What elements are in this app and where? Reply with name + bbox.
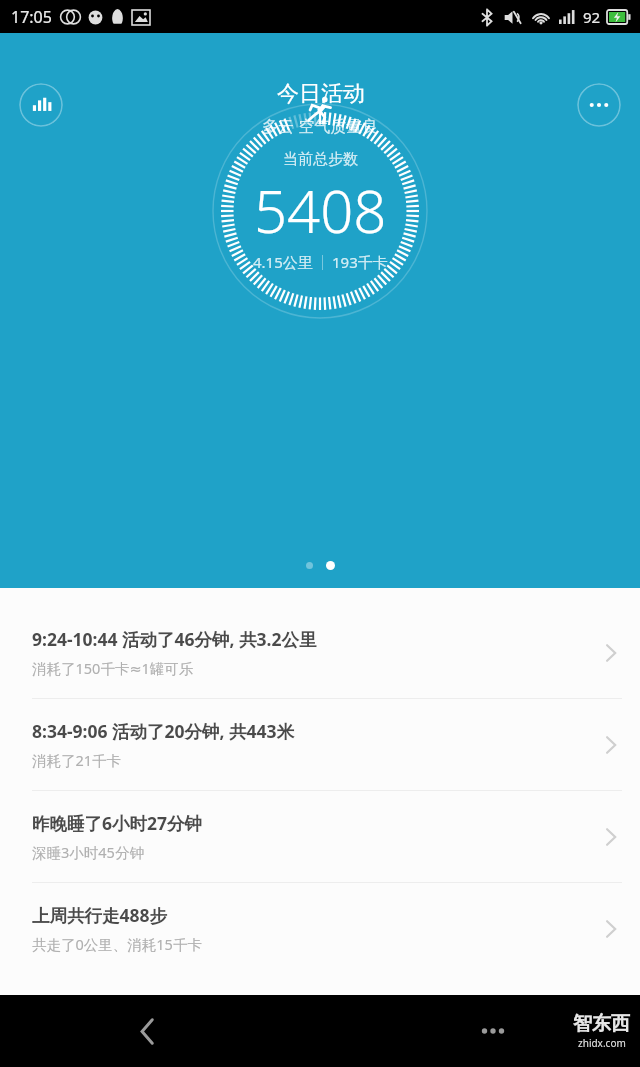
staticText: 5408 bbox=[254, 171, 387, 250]
staticText: 8:34-9:06 活动了20分钟, 共443米 bbox=[32, 719, 295, 743]
button[interactable]: 8:34-9:06 活动了20分钟, 共443米 bbox=[0, 699, 640, 790]
staticText: 今日活动 bbox=[277, 80, 365, 108]
staticText: 17:05 bbox=[11, 6, 52, 28]
button[interactable]: More options bbox=[577, 83, 621, 127]
button[interactable]: 昨晚睡了6小时27分钟 bbox=[0, 791, 640, 882]
staticText: 消耗了21千卡 bbox=[32, 750, 122, 770]
button[interactable] bbox=[306, 562, 313, 569]
staticText: 共走了0公里、消耗15千卡 bbox=[32, 934, 202, 954]
staticText: 92 bbox=[583, 7, 601, 27]
button[interactable]: Statistics bbox=[19, 83, 63, 127]
staticText: 当前总步数 bbox=[283, 150, 358, 169]
staticText: 193千卡 bbox=[332, 252, 388, 272]
staticText: 昨晚睡了6小时27分钟 bbox=[32, 811, 203, 835]
staticText: 4.15公里 bbox=[253, 252, 313, 272]
button[interactable]: Menu bbox=[464, 1002, 522, 1060]
button[interactable]: 上周共行走488步 bbox=[0, 883, 640, 974]
button[interactable]: Back bbox=[118, 1002, 176, 1060]
staticText: 9:24-10:44 活动了46分钟, 共3.2公里 bbox=[32, 627, 317, 651]
staticText: 上周共行走488步 bbox=[32, 903, 168, 927]
staticText: 消耗了150千卡≈1罐可乐 bbox=[32, 658, 194, 678]
staticText: 智东西 bbox=[573, 1012, 630, 1036]
staticText: 深睡3小时45分钟 bbox=[32, 842, 144, 862]
button[interactable]: 9:24-10:44 活动了46分钟, 共3.2公里 bbox=[0, 607, 640, 698]
button[interactable] bbox=[326, 561, 335, 570]
staticText: zhidx.com bbox=[578, 1036, 626, 1050]
staticText: 多云 空气质量良 bbox=[262, 115, 379, 137]
